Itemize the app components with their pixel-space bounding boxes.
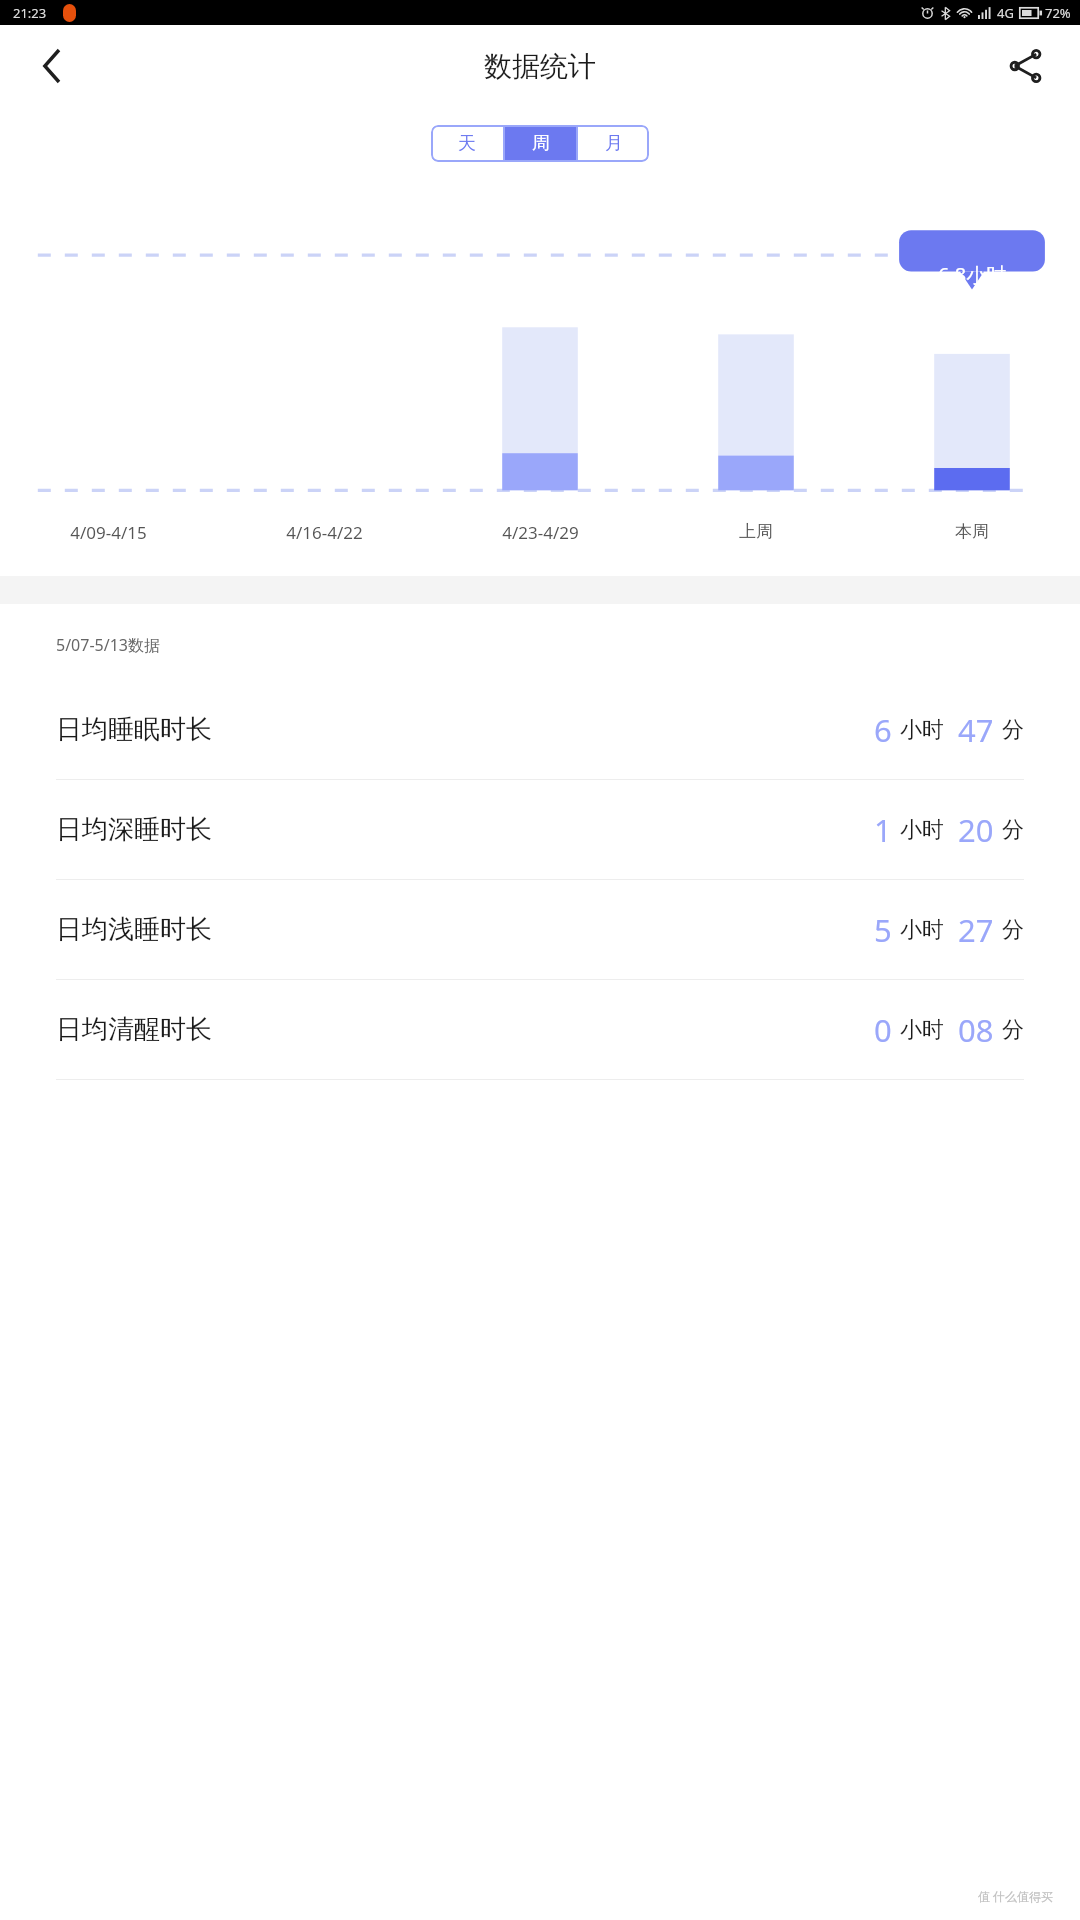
staticText: 0: [874, 1009, 892, 1051]
staticText: 小时: [900, 1016, 944, 1044]
staticText: 4G: [997, 4, 1014, 22]
button[interactable]: 日均深睡时长: [0, 780, 1080, 879]
staticText: 本周: [955, 521, 989, 542]
staticText: 分: [1002, 816, 1024, 844]
staticText: 分: [1002, 716, 1024, 744]
staticText: 6: [874, 709, 892, 751]
staticText: 日均深睡时长: [56, 813, 212, 846]
staticText: 1: [874, 809, 892, 851]
staticText: 日均浅睡时长: [56, 913, 212, 946]
staticText: 日均清醒时长: [56, 1013, 212, 1046]
staticText: 数据统计: [484, 49, 596, 84]
staticText: 21:23: [13, 4, 47, 22]
staticText: 值 什么值得买: [978, 1888, 1054, 1904]
button[interactable]: Share: [996, 36, 1056, 96]
staticText: 6.8小时: [938, 261, 1007, 288]
staticText: 天: [458, 132, 476, 155]
staticText: 分: [1002, 1016, 1024, 1044]
staticText: 5/07-5/13数据: [56, 634, 160, 656]
staticText: 上周: [739, 521, 773, 542]
staticText: 4/16-4/22: [286, 521, 363, 544]
staticText: 5: [874, 909, 892, 951]
staticText: 72%: [1045, 4, 1071, 22]
staticText: 20: [958, 809, 994, 851]
button[interactable]: 日均浅睡时长: [0, 880, 1080, 979]
staticText: 分: [1002, 916, 1024, 944]
staticText: 08: [958, 1009, 994, 1051]
staticText: 47: [958, 709, 994, 751]
staticText: 27: [958, 909, 994, 951]
button[interactable]: 周: [505, 125, 576, 162]
button[interactable]: 天: [431, 125, 503, 162]
staticText: 周: [532, 132, 550, 155]
button[interactable]: 月: [578, 125, 649, 162]
staticText: 小时: [900, 916, 944, 944]
button[interactable]: 日均睡眠时长: [0, 680, 1080, 779]
button[interactable]: 日均清醒时长: [0, 980, 1080, 1079]
staticText: 小时: [900, 816, 944, 844]
button[interactable]: Back: [22, 36, 82, 96]
staticText: 月: [605, 132, 623, 155]
staticText: 4/23-4/29: [502, 521, 579, 544]
staticText: 日均睡眠时长: [56, 713, 212, 746]
staticText: 4/09-4/15: [70, 521, 147, 544]
staticText: 小时: [900, 716, 944, 744]
